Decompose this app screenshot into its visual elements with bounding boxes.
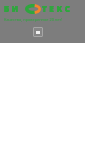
- staticText: ТЕКС: [42, 3, 73, 14]
- staticText: Качество, проверенное 20 лет!: [4, 17, 63, 22]
- staticText: БИ: [4, 3, 21, 14]
- staticText: БИ: [4, 3, 21, 14]
- button[interactable]: Image placeholder: [33, 27, 43, 37]
- staticText: ТЕКС: [42, 3, 73, 14]
- staticText: БИ: [4, 3, 21, 14]
- staticText: ТЕКС: [42, 3, 73, 14]
